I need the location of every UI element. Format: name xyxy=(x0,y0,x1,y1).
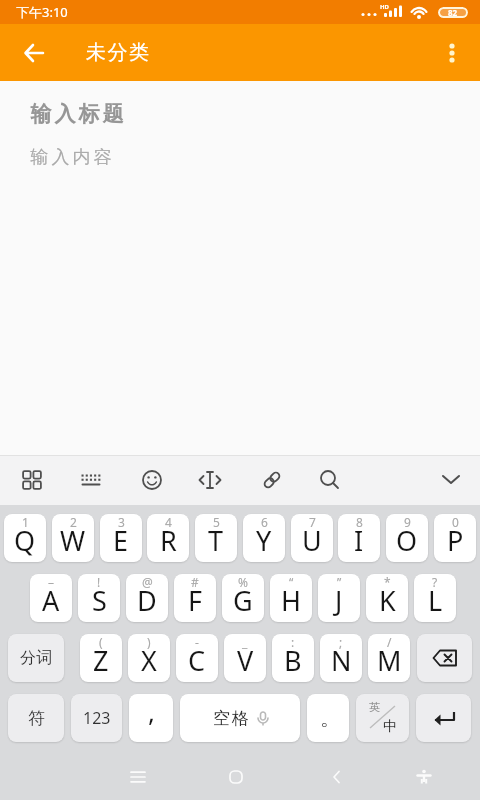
staticText: @ xyxy=(142,574,153,590)
staticText: 2 xyxy=(70,514,77,530)
staticText: G xyxy=(233,582,253,619)
button[interactable] xyxy=(273,455,342,505)
button[interactable] xyxy=(136,455,204,505)
button[interactable] xyxy=(0,455,68,505)
staticText: 3 xyxy=(118,514,125,530)
staticText: N xyxy=(331,642,352,679)
staticText: M xyxy=(377,642,402,679)
button[interactable]: 5 xyxy=(195,514,237,562)
staticText: Q xyxy=(14,522,36,559)
button[interactable]: # xyxy=(174,574,216,622)
button[interactable] xyxy=(400,753,448,800)
button[interactable]: 分词 xyxy=(8,634,64,682)
staticText: “ xyxy=(289,574,294,590)
staticText: _ xyxy=(242,634,248,650)
staticText: O xyxy=(396,522,418,559)
button[interactable] xyxy=(68,455,136,505)
staticText: 中 xyxy=(383,718,397,736)
staticText: 9 xyxy=(404,514,411,530)
staticText: E xyxy=(113,522,129,559)
button[interactable]: : xyxy=(272,634,314,682)
staticText: D xyxy=(137,582,157,619)
staticText: , xyxy=(148,694,155,729)
button[interactable] xyxy=(114,753,162,800)
staticText: V xyxy=(237,642,254,679)
button[interactable]: – xyxy=(30,574,72,622)
button[interactable]: 123 xyxy=(71,694,122,742)
button[interactable]: * xyxy=(366,574,408,622)
button[interactable]: 空格 xyxy=(180,694,300,742)
staticText: % xyxy=(238,574,248,590)
button[interactable]: 7 xyxy=(291,514,333,562)
staticText: P xyxy=(447,522,464,559)
button[interactable] xyxy=(14,33,54,73)
button[interactable]: 8 xyxy=(338,514,380,562)
button[interactable]: ” xyxy=(318,574,360,622)
staticText: ! xyxy=(97,574,101,590)
staticText: U xyxy=(302,522,322,559)
button[interactable]: 输入标题 xyxy=(0,101,480,127)
staticText: W xyxy=(60,522,86,559)
staticText: I xyxy=(354,522,364,559)
staticText: Z xyxy=(93,642,109,679)
staticText: 8 xyxy=(356,514,363,530)
button[interactable]: ! xyxy=(78,574,120,622)
staticText: K xyxy=(379,582,396,619)
staticText: 82 xyxy=(448,7,458,18)
button[interactable]: 1 xyxy=(4,514,46,562)
staticText: - xyxy=(195,634,199,650)
button[interactable]: ? xyxy=(414,574,456,622)
staticText: / xyxy=(387,634,392,650)
staticText: 5 xyxy=(213,514,220,530)
button[interactable]: _ xyxy=(224,634,266,682)
staticText: S xyxy=(92,582,107,619)
staticText: ? xyxy=(432,574,438,590)
staticText: : xyxy=(291,634,295,650)
button[interactable]: 9 xyxy=(386,514,428,562)
staticText: 空格 xyxy=(212,708,250,729)
button[interactable] xyxy=(434,35,470,71)
staticText: A xyxy=(42,582,60,619)
button[interactable]: @ xyxy=(126,574,168,622)
button[interactable]: ( xyxy=(80,634,122,682)
staticText: T xyxy=(208,522,224,559)
staticText: 符 xyxy=(28,708,45,729)
button[interactable]: 4 xyxy=(147,514,189,562)
button[interactable]: ) xyxy=(128,634,170,682)
button[interactable]: 输入内容 xyxy=(0,146,480,169)
staticText: 英 xyxy=(369,700,380,714)
button[interactable]: “ xyxy=(270,574,312,622)
staticText: 7 xyxy=(309,514,316,530)
button[interactable] xyxy=(416,694,471,742)
button[interactable]: % xyxy=(222,574,264,622)
staticText: 4 xyxy=(165,514,172,530)
button[interactable]: 符 xyxy=(8,694,64,742)
button[interactable]: , xyxy=(129,694,173,742)
button[interactable] xyxy=(411,455,480,505)
button[interactable]: 英 xyxy=(356,694,409,742)
button[interactable] xyxy=(204,455,273,505)
button[interactable]: 0 xyxy=(434,514,476,562)
button[interactable] xyxy=(313,753,361,800)
staticText: 未分类 xyxy=(86,40,151,65)
staticText: HD xyxy=(380,3,389,11)
staticText: 1 xyxy=(22,514,29,530)
staticText: L xyxy=(428,582,443,619)
staticText: 123 xyxy=(83,707,111,729)
button[interactable] xyxy=(417,634,472,682)
staticText: 6 xyxy=(261,514,268,530)
button[interactable]: 2 xyxy=(52,514,94,562)
staticText: F xyxy=(188,582,203,619)
button[interactable]: - xyxy=(176,634,218,682)
button[interactable]: 3 xyxy=(100,514,142,562)
button[interactable]: ; xyxy=(320,634,362,682)
staticText: 输入内容 xyxy=(29,146,113,169)
staticText: X xyxy=(141,642,157,679)
button[interactable]: 。 xyxy=(307,694,349,742)
button[interactable]: 6 xyxy=(243,514,285,562)
staticText: 0 xyxy=(452,514,459,530)
button[interactable] xyxy=(212,753,260,800)
button[interactable]: / xyxy=(368,634,410,682)
staticText: R xyxy=(160,522,177,559)
